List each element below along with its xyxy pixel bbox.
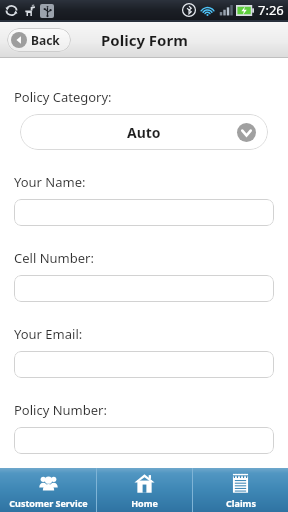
button[interactable]: Home: [97, 468, 192, 512]
staticText: Customer Service: [9, 497, 88, 509]
button[interactable]: Auto: [20, 114, 268, 150]
button[interactable]: Back: [7, 28, 71, 52]
staticText: Home: [131, 497, 158, 509]
button[interactable]: [14, 199, 274, 226]
staticText: Claims: [226, 497, 256, 509]
staticText: 7:26: [258, 1, 284, 19]
staticText: Your Name:: [14, 173, 86, 191]
button[interactable]: Customer Service: [0, 468, 96, 512]
staticText: Policy Number:: [14, 401, 107, 419]
staticText: Policy Form: [101, 30, 188, 50]
button[interactable]: [14, 351, 274, 378]
button[interactable]: Claims: [193, 468, 288, 512]
button[interactable]: [14, 427, 274, 454]
staticText: Cell Number:: [14, 249, 94, 267]
staticText: Auto: [127, 123, 161, 142]
staticText: Policy Category:: [14, 88, 112, 106]
staticText: Back: [31, 32, 60, 48]
button[interactable]: [14, 275, 274, 302]
staticText: Your Email:: [14, 325, 83, 343]
